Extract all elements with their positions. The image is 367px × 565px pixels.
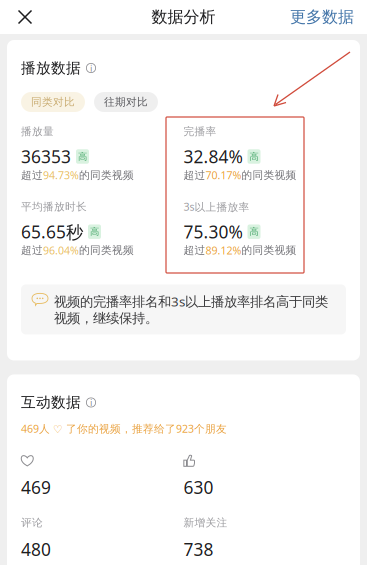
staticText: 完播率 (183, 125, 216, 138)
staticText: 超过 (183, 169, 205, 182)
staticText: 32.84% (183, 145, 242, 168)
staticText: 数据分析 (151, 7, 215, 27)
staticText: 互动数据 (21, 393, 81, 411)
staticText: 播放数据 (21, 59, 81, 77)
staticText: 高 (249, 151, 258, 162)
staticText: 往期对比 (104, 95, 148, 109)
staticText: 超过 (21, 244, 43, 257)
staticText: 播放量 (21, 125, 54, 138)
staticText: 超过 (21, 169, 43, 182)
staticText: 36353 (21, 145, 71, 168)
staticText: 75.30% (183, 220, 242, 243)
staticText: 的同类视频 (241, 169, 296, 182)
staticText: 的同类视频 (79, 244, 134, 257)
staticText: 89.12% (205, 243, 241, 257)
staticText: i (90, 396, 92, 409)
staticText: 平均播放时长 (21, 200, 87, 213)
staticText: i (90, 62, 92, 74)
staticText: 同类对比 (31, 95, 75, 109)
staticText: 70.17% (205, 168, 241, 182)
staticText: 高 (249, 226, 258, 237)
staticText: 3s以上播放率 (183, 200, 249, 214)
staticText: 630 (183, 476, 213, 499)
staticText: 评论 (21, 516, 43, 529)
button[interactable]: 同类对比 (21, 92, 85, 112)
staticText: 469 (21, 476, 51, 499)
button[interactable]: 往期对比 (94, 92, 158, 112)
staticText: 480 (21, 538, 51, 561)
staticText: 超过 (183, 244, 205, 257)
staticText: 469人 ♡ 了你的视频，推荐给了923个朋友 (21, 421, 227, 436)
staticText: 96.04% (43, 243, 79, 257)
staticText: 的同类视频 (79, 169, 134, 182)
staticText: 738 (183, 538, 213, 561)
staticText: 更多数据 (290, 7, 354, 27)
staticText: 高 (90, 226, 99, 237)
staticText: 高 (78, 151, 87, 162)
button[interactable]: Close (5, 0, 45, 34)
staticText: 新增关注 (183, 516, 227, 529)
staticText: 65.65秒 (21, 220, 83, 243)
staticText: 的同类视频 (241, 244, 296, 257)
staticText: 视频的完播率排名和3s以上播放率排名高于同类视频，继续保持。 (54, 292, 328, 326)
staticText: 94.73% (43, 168, 79, 182)
button[interactable]: 更多数据 (282, 0, 362, 34)
